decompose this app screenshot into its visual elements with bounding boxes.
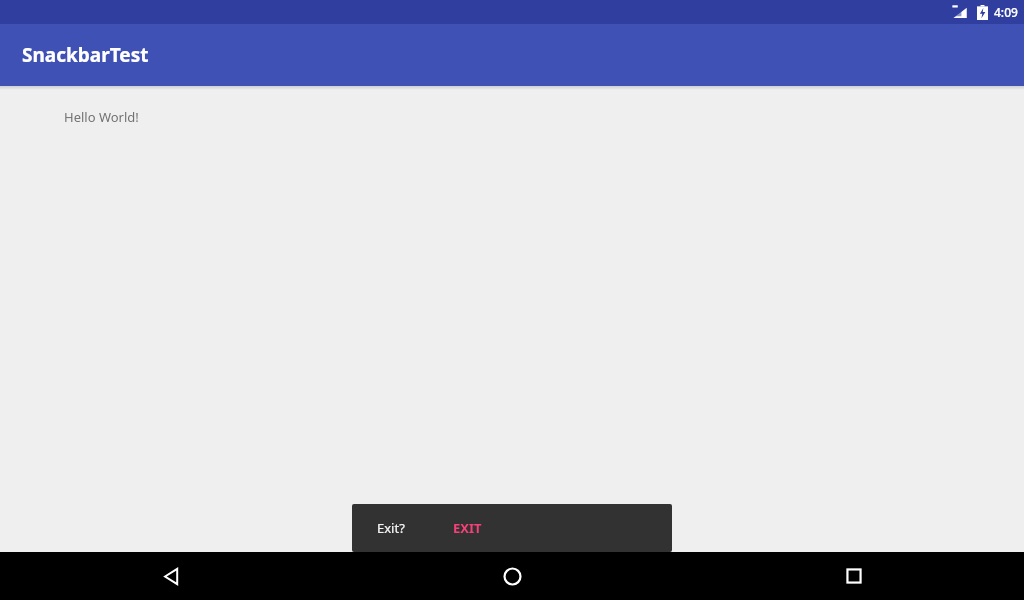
button[interactable]: EXIT xyxy=(451,513,484,543)
staticText: Exit? xyxy=(377,519,405,537)
staticText: SnackbarTest xyxy=(22,42,149,68)
staticText: 4:09 xyxy=(994,4,1018,20)
staticText: EXIT xyxy=(453,519,482,537)
button[interactable]: Recent apps xyxy=(683,552,1024,600)
button[interactable]: Back xyxy=(0,552,342,600)
staticText: Hello World! xyxy=(64,108,139,126)
button[interactable]: Home xyxy=(342,552,683,600)
button[interactable]: Exit? xyxy=(352,504,672,552)
